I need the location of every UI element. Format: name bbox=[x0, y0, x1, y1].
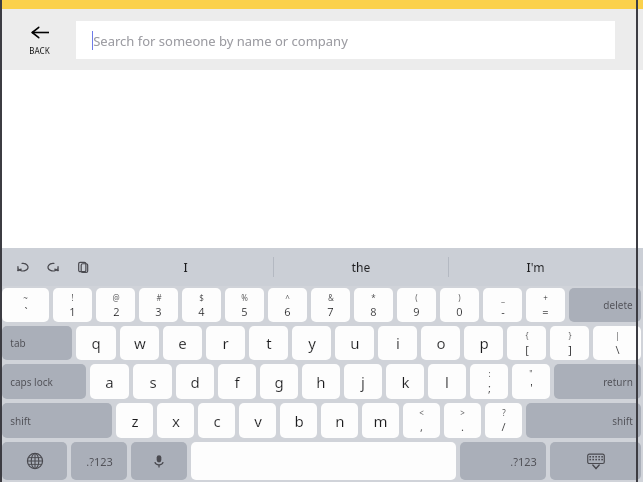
staticText: < bbox=[419, 407, 424, 418]
button[interactable]: w bbox=[120, 326, 159, 360]
button[interactable]: Undo bbox=[10, 254, 36, 280]
button[interactable]: l bbox=[428, 364, 466, 399]
button[interactable]: Switch language bbox=[2, 442, 67, 480]
button[interactable]: n bbox=[321, 403, 358, 438]
staticText: BACK bbox=[29, 45, 50, 56]
staticText: shift bbox=[612, 414, 633, 428]
button[interactable]: t bbox=[249, 326, 288, 360]
staticText: m bbox=[373, 411, 388, 431]
staticText: [ bbox=[525, 342, 529, 357]
button[interactable]: _ bbox=[483, 288, 522, 322]
staticText: 6 bbox=[284, 304, 291, 319]
button[interactable]: < bbox=[403, 403, 440, 438]
staticText: I bbox=[183, 259, 188, 275]
button[interactable]: > bbox=[444, 403, 481, 438]
button[interactable]: & bbox=[311, 288, 350, 322]
button[interactable]: # bbox=[139, 288, 178, 322]
button[interactable]: j bbox=[344, 364, 382, 399]
button[interactable]: r bbox=[206, 326, 245, 360]
button[interactable]: Dictate bbox=[131, 442, 187, 480]
staticText: c bbox=[213, 411, 221, 431]
staticText: w bbox=[134, 333, 146, 353]
button[interactable]: BACK bbox=[10, 9, 68, 70]
button[interactable]: y bbox=[292, 326, 331, 360]
button[interactable]: ^ bbox=[268, 288, 307, 322]
staticText: " bbox=[529, 368, 533, 379]
button[interactable]: ) bbox=[440, 288, 479, 322]
staticText: ^ bbox=[285, 292, 290, 303]
button[interactable]: * bbox=[354, 288, 393, 322]
button[interactable]: the bbox=[273, 248, 448, 286]
button[interactable]: I'm bbox=[448, 248, 623, 286]
staticText: s bbox=[149, 372, 157, 392]
staticText: Search for someone by name or company bbox=[93, 32, 348, 50]
button[interactable]: tab bbox=[2, 326, 72, 360]
button[interactable]: Paste bbox=[70, 254, 96, 280]
button[interactable]: d bbox=[176, 364, 214, 399]
staticText: I'm bbox=[526, 259, 545, 275]
button[interactable]: .?123 bbox=[71, 442, 127, 480]
button[interactable]: $ bbox=[182, 288, 221, 322]
button[interactable]: i bbox=[378, 326, 417, 360]
button[interactable]: g bbox=[260, 364, 298, 399]
staticText: l bbox=[445, 372, 449, 392]
button[interactable]: o bbox=[421, 326, 460, 360]
staticText: o bbox=[436, 333, 446, 353]
staticText: 8 bbox=[370, 304, 377, 319]
staticText: = bbox=[542, 304, 549, 319]
staticText: p bbox=[479, 333, 489, 353]
staticText: k bbox=[401, 372, 410, 392]
button[interactable]: b bbox=[280, 403, 317, 438]
button[interactable]: ! bbox=[53, 288, 92, 322]
button[interactable]: e bbox=[163, 326, 202, 360]
button[interactable]: c bbox=[198, 403, 235, 438]
staticText: d bbox=[190, 372, 200, 392]
button[interactable]: v bbox=[239, 403, 276, 438]
button[interactable]: | bbox=[593, 326, 641, 360]
staticText: } bbox=[568, 330, 572, 341]
staticText: .?123 bbox=[510, 454, 537, 469]
button[interactable]: u bbox=[335, 326, 374, 360]
button[interactable]: ? bbox=[485, 403, 522, 438]
button[interactable]: s bbox=[133, 364, 172, 399]
staticText: j bbox=[361, 372, 365, 392]
button[interactable]: + bbox=[526, 288, 565, 322]
button[interactable]: ~ bbox=[2, 288, 49, 322]
button[interactable]: delete bbox=[569, 288, 641, 322]
button[interactable]: m bbox=[362, 403, 399, 438]
button[interactable]: a bbox=[90, 364, 129, 399]
staticText: * bbox=[371, 292, 376, 303]
button[interactable]: return bbox=[554, 364, 641, 399]
button[interactable]: Hide keyboard bbox=[550, 442, 641, 480]
button[interactable]: I bbox=[98, 248, 273, 286]
button[interactable]: caps lock bbox=[2, 364, 86, 399]
staticText: 3 bbox=[155, 304, 162, 319]
button[interactable]: shift bbox=[2, 403, 112, 438]
button[interactable]: : bbox=[470, 364, 508, 399]
button[interactable]: Search for someone by name or company bbox=[76, 21, 615, 59]
button[interactable]: f bbox=[218, 364, 256, 399]
button[interactable]: h bbox=[302, 364, 340, 399]
staticText: , bbox=[420, 419, 423, 434]
button[interactable]: % bbox=[225, 288, 264, 322]
button[interactable]: q bbox=[76, 326, 116, 360]
button[interactable]: Redo bbox=[40, 254, 66, 280]
button[interactable]: p bbox=[464, 326, 503, 360]
staticText: % bbox=[241, 292, 248, 303]
staticText: ) bbox=[458, 292, 461, 303]
button[interactable]: { bbox=[507, 326, 546, 360]
button[interactable]: .?123 bbox=[460, 442, 546, 480]
button[interactable]: z bbox=[116, 403, 153, 438]
button[interactable]: k bbox=[386, 364, 424, 399]
button[interactable]: @ bbox=[96, 288, 135, 322]
staticText: n bbox=[335, 411, 345, 431]
button[interactable]: shift bbox=[526, 403, 641, 438]
button[interactable]: " bbox=[512, 364, 550, 399]
staticText: 7 bbox=[327, 304, 334, 319]
staticText: # bbox=[156, 292, 162, 303]
button[interactable]: x bbox=[157, 403, 194, 438]
button[interactable]: ( bbox=[397, 288, 436, 322]
button[interactable]: } bbox=[550, 326, 589, 360]
staticText: 4 bbox=[198, 304, 205, 319]
